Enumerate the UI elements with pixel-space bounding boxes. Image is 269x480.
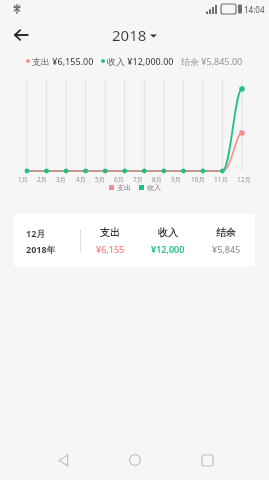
staticText: 支出 — [117, 183, 131, 192]
staticText: 2月 — [34, 175, 50, 184]
staticText: 7月 — [130, 175, 146, 184]
staticText: 9月 — [168, 175, 184, 184]
button[interactable]: Back — [6, 20, 36, 50]
staticText: ¥6,155 — [96, 243, 125, 255]
staticText: 结余 ¥5,845.00 — [181, 55, 243, 67]
staticText: 11月 — [211, 175, 231, 184]
button[interactable]: 12月 — [14, 214, 255, 267]
staticText: 10月 — [188, 175, 208, 184]
staticText: ¥12,000 — [151, 243, 185, 255]
staticText: 1月 — [15, 175, 31, 184]
staticText: 5月 — [92, 175, 108, 184]
staticText: 2018 — [112, 25, 147, 45]
staticText: 14:04 — [244, 4, 265, 15]
staticText: 12月 — [234, 175, 254, 184]
button[interactable]: Recents — [184, 440, 230, 480]
button[interactable]: Back — [40, 440, 86, 480]
staticText: 3月 — [53, 175, 69, 184]
staticText: 8月 — [149, 175, 165, 184]
staticText: ¥5,845 — [212, 243, 241, 255]
staticText: 收入 — [147, 183, 161, 192]
staticText: 4月 — [73, 175, 89, 184]
staticText: 结余 — [216, 226, 236, 239]
staticText: 支出 — [100, 226, 120, 239]
button[interactable]: 2018 — [112, 25, 157, 45]
staticText: 支出 ¥6,155.00 — [32, 55, 94, 67]
staticText: 6月 — [111, 175, 127, 184]
staticText: 收入 ¥12,000.00 — [107, 55, 174, 67]
staticText: 2018年 — [26, 243, 56, 255]
staticText: 12月 — [26, 227, 46, 239]
button[interactable]: Home — [112, 440, 158, 480]
staticText: 收入 — [158, 226, 178, 239]
